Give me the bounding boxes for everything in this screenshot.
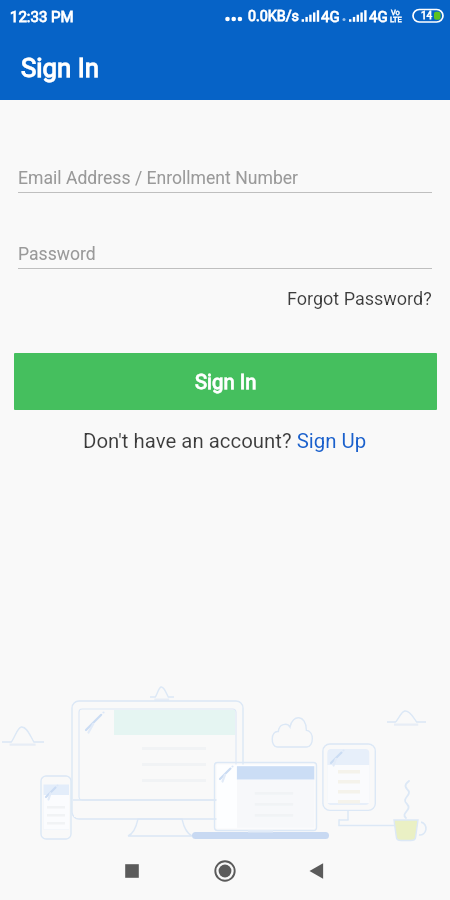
button[interactable]: Email Address / Enrollment Number — [18, 168, 432, 189]
button[interactable]: Password — [18, 244, 432, 265]
staticText: Email Address / Enrollment Number — [18, 168, 299, 189]
staticText: Sign In — [21, 53, 99, 83]
button[interactable]: Don't have an account? Sign Up — [79, 425, 371, 457]
staticText: 4G — [321, 8, 340, 26]
staticText: 4G — [369, 8, 388, 26]
staticText: Forgot Password? — [287, 288, 432, 309]
staticText: 12:33 PM — [10, 8, 74, 26]
staticText: Don't have an account? Sign Up — [83, 429, 367, 453]
staticText: Sign In — [195, 370, 257, 394]
button[interactable]: Back — [294, 848, 340, 894]
button[interactable]: Recent apps — [109, 848, 155, 894]
staticText: Vo — [391, 8, 400, 17]
staticText: LTE — [390, 15, 402, 24]
staticText: 14 — [421, 10, 433, 22]
button[interactable]: Forgot Password? — [285, 284, 434, 313]
button[interactable]: Sign In — [14, 353, 437, 410]
button[interactable]: Home — [202, 848, 248, 894]
staticText: Password — [18, 244, 96, 265]
staticText: 0.0KB/s — [248, 8, 299, 25]
